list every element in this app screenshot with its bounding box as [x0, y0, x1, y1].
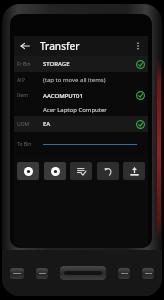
button[interactable]: Key 3 [118, 268, 130, 279]
staticText: Item [17, 92, 43, 99]
staticText: STORAGE [43, 60, 136, 68]
button[interactable]: Key 1 [10, 268, 24, 279]
staticText: Fr Bin [17, 61, 43, 68]
button[interactable]: Scan bin [44, 162, 66, 180]
staticText: Acer Laptop Computer [43, 106, 107, 114]
staticText: AACOMPUT01 [43, 92, 136, 100]
staticText: (tap to move all items) [43, 76, 135, 84]
button[interactable]: Undo [97, 162, 119, 180]
button[interactable]: Back [16, 37, 34, 55]
button[interactable]: More options [130, 38, 146, 54]
button[interactable]: Key 2 [36, 268, 48, 279]
staticText: UOM [17, 121, 43, 128]
staticText: All? [17, 77, 43, 84]
button[interactable]: Scan item [17, 162, 39, 180]
button[interactable]: All? [14, 72, 148, 88]
staticText: To Bin [17, 141, 43, 148]
button[interactable]: Item [14, 88, 148, 116]
button[interactable]: To Bin [14, 132, 148, 156]
button[interactable]: Fr Bin [14, 56, 148, 72]
button[interactable]: UOM [14, 116, 148, 132]
button[interactable]: Confirm list [70, 162, 92, 180]
button[interactable]: Scan key [60, 266, 106, 280]
button[interactable]: Key 4 [142, 268, 154, 279]
staticText: EA [43, 120, 136, 128]
button[interactable]: Upload [123, 162, 145, 180]
staticText: Transfer [40, 39, 80, 53]
